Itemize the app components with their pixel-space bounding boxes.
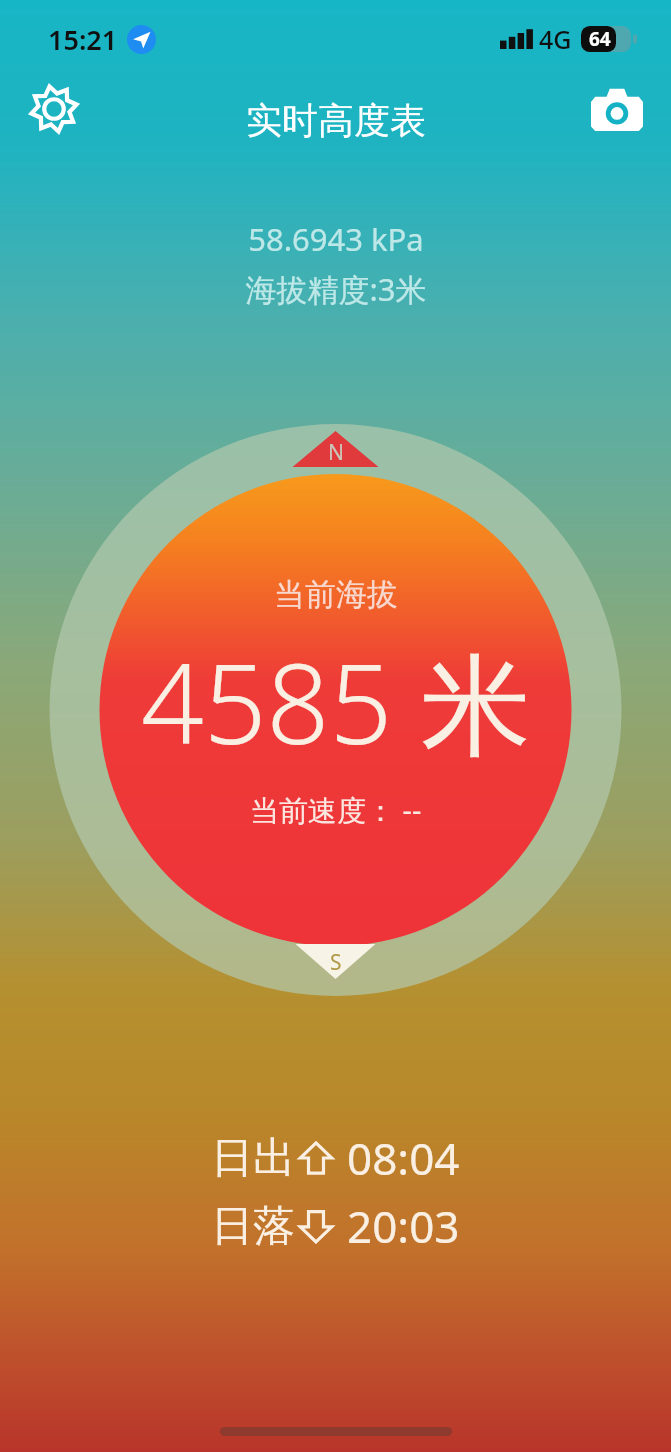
button[interactable]: Camera — [581, 73, 653, 145]
staticText: 64 — [589, 26, 611, 52]
staticText: 4585 米 — [141, 626, 531, 776]
staticText: 日出 — [211, 1132, 295, 1185]
staticText: S — [330, 948, 342, 977]
staticText: 当前海拔 — [274, 575, 398, 614]
staticText: N — [328, 438, 344, 467]
staticText: 15:21 — [48, 21, 118, 58]
staticText: 4G — [539, 22, 572, 56]
button[interactable]: Settings — [18, 73, 90, 145]
staticText: 海拔精度:3米 — [245, 268, 427, 310]
staticText: 当前速度： -- — [250, 790, 422, 830]
staticText: 58.6943 kPa — [248, 218, 424, 260]
staticText: 20:03 — [347, 1196, 460, 1256]
staticText: 08:04 — [347, 1128, 460, 1188]
staticText: 实时高度表 — [246, 98, 426, 143]
staticText: 日落 — [211, 1200, 295, 1253]
